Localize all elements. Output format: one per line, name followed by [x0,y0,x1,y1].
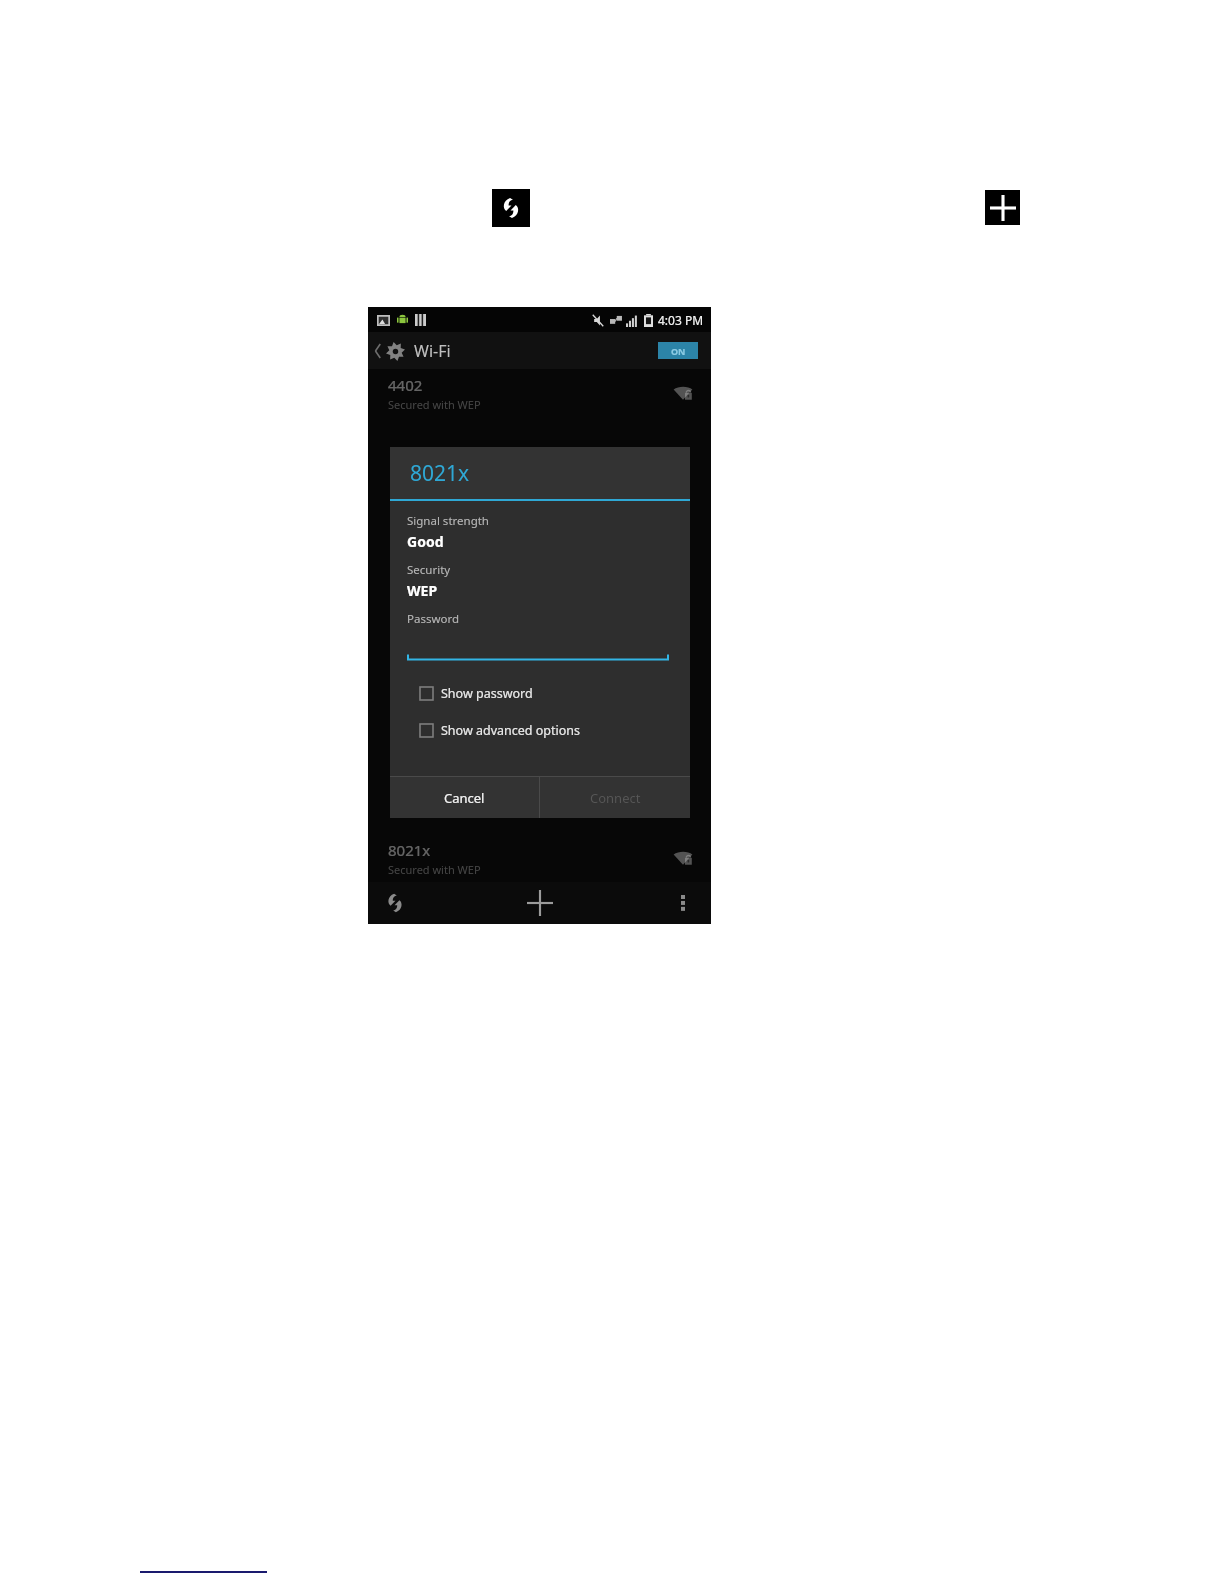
button[interactable]: 8021x [368,834,711,882]
button[interactable]: WPS push button [492,189,530,227]
staticText: Connect [590,789,641,807]
button[interactable]: Show advanced options [407,720,587,741]
staticText: Secured with WEP [388,862,481,877]
staticText: Cancel [444,789,485,807]
staticText: ON [671,345,686,357]
button[interactable]: WPS push button [382,890,408,916]
staticText: 8021x [410,459,470,488]
staticText: Security [407,562,451,578]
button[interactable]: Show password [407,683,539,704]
button[interactable]: 4402 [368,369,711,417]
staticText: 4402 [388,375,423,395]
staticText: Good [407,532,444,551]
button[interactable]: More options [673,893,693,913]
button[interactable]: Wi-Fi [368,332,711,369]
staticText: Secured with WEP [388,397,481,412]
button[interactable]: Add network [985,190,1020,225]
staticText: 8021x [388,840,431,860]
staticText: Wi-Fi [414,340,451,362]
staticText: Show password [441,685,533,702]
staticText: WEP [407,581,438,600]
button[interactable]: Cancel [390,777,539,818]
button[interactable]: Add network [523,886,557,920]
button[interactable]: ON [658,342,698,359]
button[interactable] [407,649,669,661]
staticText: Show advanced options [441,722,581,739]
staticText: Password [407,611,460,627]
staticText: 4:03 PM [658,312,704,328]
staticText: Signal strength [407,513,489,529]
button[interactable]: Connect [540,777,690,818]
